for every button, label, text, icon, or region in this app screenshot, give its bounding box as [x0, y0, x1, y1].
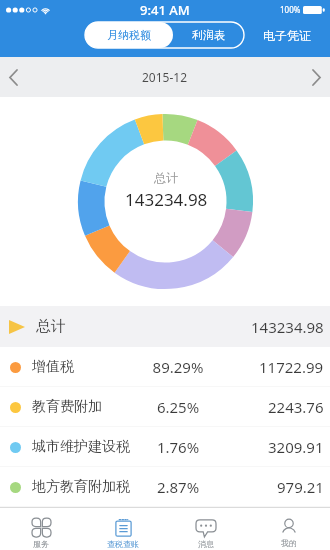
staticText: 2.87%	[138, 477, 218, 497]
button[interactable]: 电子凭证	[244, 22, 330, 48]
staticText: 服务	[33, 539, 49, 549]
staticText: 2015-12	[142, 69, 188, 85]
button[interactable]: 消息	[164, 508, 247, 550]
staticText: 教育费附加	[32, 398, 102, 416]
staticText: 地方教育附加税	[32, 478, 130, 496]
staticText: 3209.91	[268, 437, 324, 457]
staticText: 电子凭证	[263, 28, 311, 43]
staticText: 11722.99	[259, 357, 324, 377]
button[interactable]: 增值税	[0, 347, 330, 387]
staticText: 消息	[198, 539, 214, 549]
staticText: 1.76%	[138, 437, 218, 457]
staticText: 143234.98	[251, 317, 324, 337]
staticText: 城市维护建设税	[32, 438, 130, 456]
staticText: 我的	[281, 538, 297, 548]
button[interactable]: 我的	[247, 508, 330, 550]
staticText: 2243.76	[268, 397, 324, 417]
staticText: 增值税	[32, 358, 74, 376]
staticText: 89.29%	[138, 357, 218, 377]
button[interactable]: 服务	[0, 508, 82, 550]
staticText: 100%	[280, 4, 301, 15]
button[interactable]: 查税查账	[82, 508, 164, 550]
staticText: 6.25%	[138, 397, 218, 417]
button[interactable]: 月纳税额	[85, 22, 173, 48]
button[interactable]: Previous month	[0, 57, 27, 97]
button[interactable]: 利润表	[173, 22, 244, 48]
staticText: 9:41 AM	[140, 1, 190, 19]
button[interactable]: 总计	[0, 306, 330, 347]
staticText: 月纳税额	[107, 28, 151, 42]
staticText: 利润表	[192, 28, 225, 42]
button[interactable]: 城市维护建设税	[0, 427, 330, 467]
button[interactable]: 教育费附加	[0, 387, 330, 427]
button[interactable]: 地方教育附加税	[0, 467, 330, 507]
staticText: 143234.98	[125, 188, 208, 211]
staticText: 979.21	[277, 477, 324, 497]
staticText: 总计	[36, 317, 66, 336]
button[interactable]: Next month	[303, 57, 330, 97]
staticText: 查税查账	[107, 539, 139, 549]
staticText: 总计	[154, 170, 178, 185]
